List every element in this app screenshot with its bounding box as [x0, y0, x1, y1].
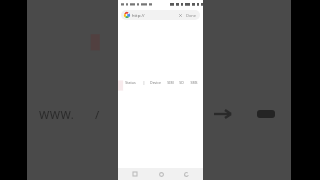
- staticText: SD: [179, 80, 184, 85]
- button[interactable]: SD: [176, 80, 187, 85]
- button[interactable]: SMS: [187, 80, 201, 85]
- button[interactable]: http://192.168.43.1: [121, 10, 200, 20]
- staticText: /: [95, 107, 100, 122]
- button[interactable]: Done: [186, 13, 197, 18]
- button[interactable]: SIM: [164, 80, 176, 85]
- staticText: SMS: [190, 80, 198, 85]
- button[interactable]: Device: [147, 80, 164, 85]
- button[interactable]: Forward: [213, 108, 233, 120]
- button[interactable]: WWW.: [39, 107, 118, 122]
- button[interactable]: |: [141, 80, 147, 85]
- button[interactable]: Label: [257, 110, 275, 118]
- button[interactable]: Recents: [127, 168, 143, 180]
- staticText: http://192.168.43.1: [132, 13, 155, 18]
- button[interactable]: Status: [120, 80, 141, 85]
- button[interactable]: Home: [153, 168, 169, 180]
- staticText: Device: [150, 80, 161, 85]
- button[interactable]: Clear: [178, 13, 183, 18]
- staticText: |: [143, 80, 145, 85]
- button[interactable]: Back: [178, 168, 194, 180]
- staticText: SIM: [167, 80, 174, 85]
- staticText: WWW.: [39, 107, 75, 122]
- staticText: Status: [125, 80, 136, 85]
